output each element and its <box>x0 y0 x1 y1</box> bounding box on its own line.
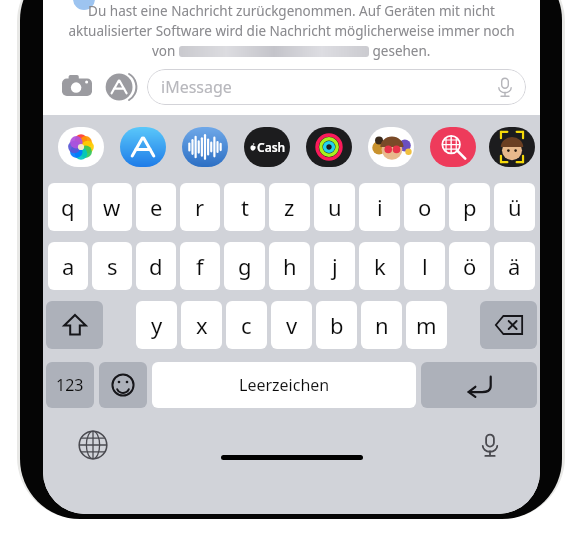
button[interactable]: Change keyboard <box>76 428 110 462</box>
staticText: gesehen. <box>369 42 431 60</box>
button[interactable]: s <box>92 242 132 290</box>
button[interactable]: j <box>314 242 355 290</box>
staticText: von <box>152 42 179 60</box>
staticText: ö <box>463 251 477 281</box>
button[interactable]: a <box>48 242 88 290</box>
staticText: Du hast eine Nachricht zurückgenommen. A… <box>88 2 495 20</box>
staticText: o <box>418 192 432 222</box>
button[interactable]: k <box>359 242 400 290</box>
button[interactable]: q <box>48 183 88 231</box>
staticText: x <box>196 310 208 340</box>
button[interactable]: iMessage <box>147 69 526 105</box>
button[interactable]: Dictate <box>494 76 516 98</box>
staticText: 123 <box>56 374 84 396</box>
button[interactable]: c <box>226 301 267 349</box>
staticText: ü <box>508 192 522 222</box>
button[interactable]: g <box>224 242 265 290</box>
button[interactable]: Shift <box>46 301 103 349</box>
button[interactable]: l <box>404 242 445 290</box>
staticText: l <box>422 251 428 281</box>
staticText: g <box>238 251 252 281</box>
button[interactable]: b <box>316 301 357 349</box>
staticText: Leerzeichen <box>239 374 330 396</box>
button[interactable]: w <box>92 183 132 231</box>
button[interactable]: f <box>180 242 220 290</box>
staticText: s <box>107 251 118 281</box>
button[interactable]: Apple Cash <box>236 115 298 178</box>
staticText: r <box>195 192 205 222</box>
button[interactable]: ö <box>449 242 490 290</box>
button[interactable]: d <box>136 242 176 290</box>
button[interactable]: z <box>269 183 310 231</box>
button[interactable]: y <box>136 301 177 349</box>
staticText: m <box>416 310 437 340</box>
button[interactable]: App Store <box>112 115 174 178</box>
staticText: d <box>149 251 163 281</box>
button[interactable]: Emoji <box>99 362 147 408</box>
button[interactable]: Leerzeichen <box>152 362 416 408</box>
staticText: ä <box>508 251 521 281</box>
staticText: t <box>241 192 249 222</box>
staticText: w <box>103 192 121 222</box>
staticText: p <box>463 192 477 222</box>
staticText: e <box>150 192 163 222</box>
button[interactable]: Apps <box>99 65 143 109</box>
button[interactable]: Dictation <box>473 428 507 462</box>
button[interactable]: t <box>224 183 265 231</box>
staticText: a <box>62 251 75 281</box>
button[interactable]: h <box>269 242 310 290</box>
button[interactable]: Activity <box>298 115 360 178</box>
staticText: c <box>241 310 252 340</box>
button[interactable]: 123 <box>46 362 94 408</box>
button[interactable]: Return <box>421 362 537 408</box>
staticText: f <box>196 251 204 281</box>
button[interactable]: x <box>181 301 222 349</box>
staticText: z <box>284 192 295 222</box>
button[interactable]: Backspace <box>480 301 537 349</box>
button[interactable]: GIF search <box>422 115 484 178</box>
button[interactable]: n <box>361 301 402 349</box>
staticText: v <box>286 310 298 340</box>
button[interactable]: Memoji <box>484 115 540 178</box>
staticText: b <box>330 310 344 340</box>
button[interactable]: ä <box>494 242 535 290</box>
staticText: n <box>375 310 389 340</box>
staticText: y <box>151 310 163 340</box>
button[interactable]: Photos <box>50 115 112 178</box>
staticText: j <box>332 251 338 281</box>
staticText: h <box>283 251 297 281</box>
button[interactable]: ü <box>494 183 535 231</box>
staticText: u <box>328 192 342 222</box>
button[interactable]: Audio <box>174 115 236 178</box>
button[interactable]: u <box>314 183 355 231</box>
button[interactable]: r <box>180 183 220 231</box>
button[interactable]: i <box>359 183 400 231</box>
button[interactable]: o <box>404 183 445 231</box>
button[interactable]: Camera <box>55 65 99 109</box>
button[interactable]: m <box>406 301 447 349</box>
staticText: i <box>377 192 383 222</box>
button[interactable]: e <box>136 183 176 231</box>
staticText: iMessage <box>161 76 232 98</box>
staticText: Cash <box>257 139 286 155</box>
staticText: k <box>374 251 386 281</box>
staticText: aktualisierter Software wird die Nachric… <box>68 22 515 40</box>
button[interactable]: p <box>449 183 490 231</box>
button[interactable]: v <box>271 301 312 349</box>
button[interactable]: Memoji Stickers <box>360 115 422 178</box>
staticText: q <box>61 192 75 222</box>
